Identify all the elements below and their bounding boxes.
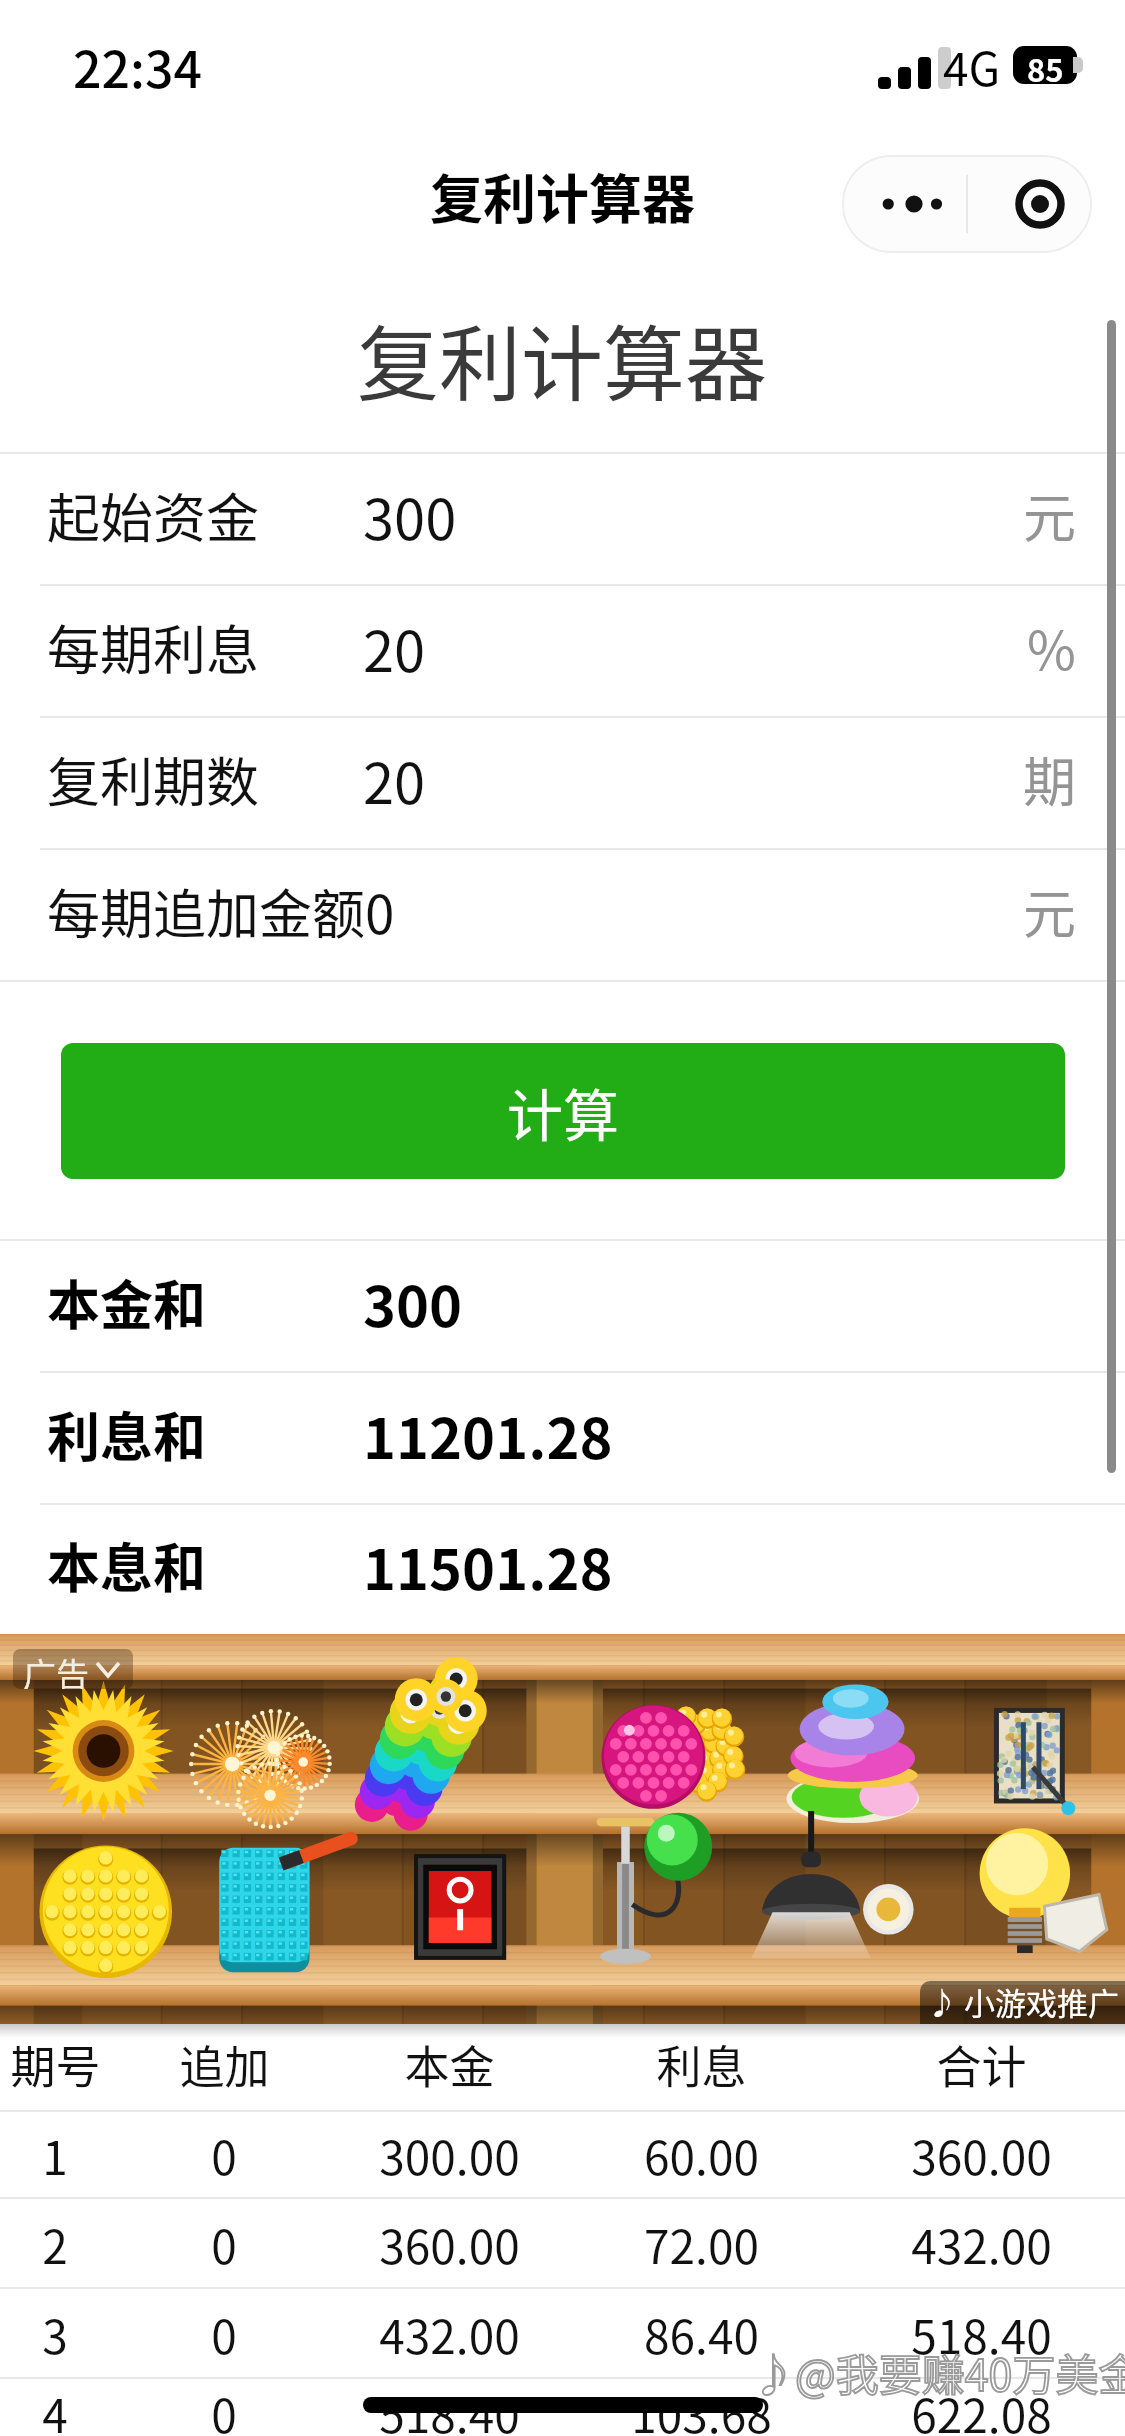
staticText: 518.40 — [379, 2380, 520, 2436]
staticText: 432.00 — [911, 2211, 1052, 2278]
staticText: 20 — [363, 739, 426, 820]
staticText: 85 — [1027, 46, 1064, 84]
staticText: 432.00 — [379, 2301, 520, 2368]
staticText: 0 — [211, 2211, 237, 2278]
staticText: 0 — [211, 2380, 237, 2436]
button[interactable]: 计算 — [61, 1043, 1065, 1179]
staticText: % — [1027, 609, 1076, 686]
staticText: 合计 — [936, 2032, 1027, 2097]
staticText: 4 — [42, 2380, 68, 2436]
staticText: 每期追加金额0 — [47, 873, 395, 950]
staticText: 期号 — [10, 2032, 101, 2097]
staticText: 4G — [943, 33, 1001, 100]
staticText: 300 — [363, 475, 457, 556]
staticText: 11201.28 — [363, 1394, 613, 1475]
staticText: 1 — [42, 2122, 68, 2189]
staticText: 103.68 — [631, 2380, 772, 2436]
staticText: 计算 — [507, 1071, 619, 1152]
staticText: 360.00 — [911, 2122, 1052, 2189]
staticText: 360.00 — [379, 2211, 520, 2278]
staticText: 60.00 — [644, 2122, 759, 2189]
staticText: 元 — [1023, 873, 1076, 950]
staticText: ♪@我要赚40万美金 — [752, 2341, 1125, 2403]
staticText: 20 — [363, 607, 426, 688]
staticText: 本金和 — [47, 1264, 206, 1341]
staticText: 0 — [211, 2301, 237, 2368]
staticText: 本金 — [404, 2032, 495, 2097]
staticText: ♪ — [927, 1981, 957, 2022]
staticText: 300.00 — [379, 2122, 520, 2189]
button[interactable]: 复利期数 — [0, 718, 1125, 848]
staticText: 0 — [211, 2122, 237, 2189]
button[interactable]: 每期追加金额0 — [0, 850, 1125, 980]
staticText: 22:34 — [73, 30, 202, 102]
staticText: 小游戏推广 — [957, 1981, 1119, 2022]
staticText: 复利计算器 — [430, 158, 695, 235]
staticText: 518.40 — [911, 2301, 1052, 2368]
staticText: 每期利息 — [47, 609, 259, 686]
staticText: 86.40 — [644, 2301, 759, 2368]
button[interactable]: 每期利息 — [0, 586, 1125, 716]
button[interactable]: 广告 — [0, 1634, 1125, 2024]
button[interactable]: 更多 关闭 — [842, 155, 1092, 253]
staticText: 2 — [42, 2211, 68, 2278]
staticText: 元 — [1023, 477, 1076, 554]
staticText: 3 — [42, 2301, 68, 2368]
staticText: 300 — [363, 1262, 463, 1343]
staticText: 复利计算器 — [357, 299, 768, 418]
staticText: 利息 — [656, 2032, 747, 2097]
staticText: 利息和 — [47, 1396, 206, 1473]
staticText: 72.00 — [644, 2211, 759, 2278]
staticText: 622.08 — [911, 2380, 1052, 2436]
staticText: 起始资金 — [47, 477, 259, 554]
staticText: 广告 — [23, 1649, 89, 1689]
staticText: 本息和 — [47, 1527, 206, 1604]
staticText: 复利期数 — [47, 741, 259, 818]
button[interactable]: 起始资金 — [0, 454, 1125, 584]
staticText: 期 — [1023, 741, 1076, 818]
staticText: 追加 — [179, 2032, 270, 2097]
staticText: 11501.28 — [363, 1525, 613, 1606]
